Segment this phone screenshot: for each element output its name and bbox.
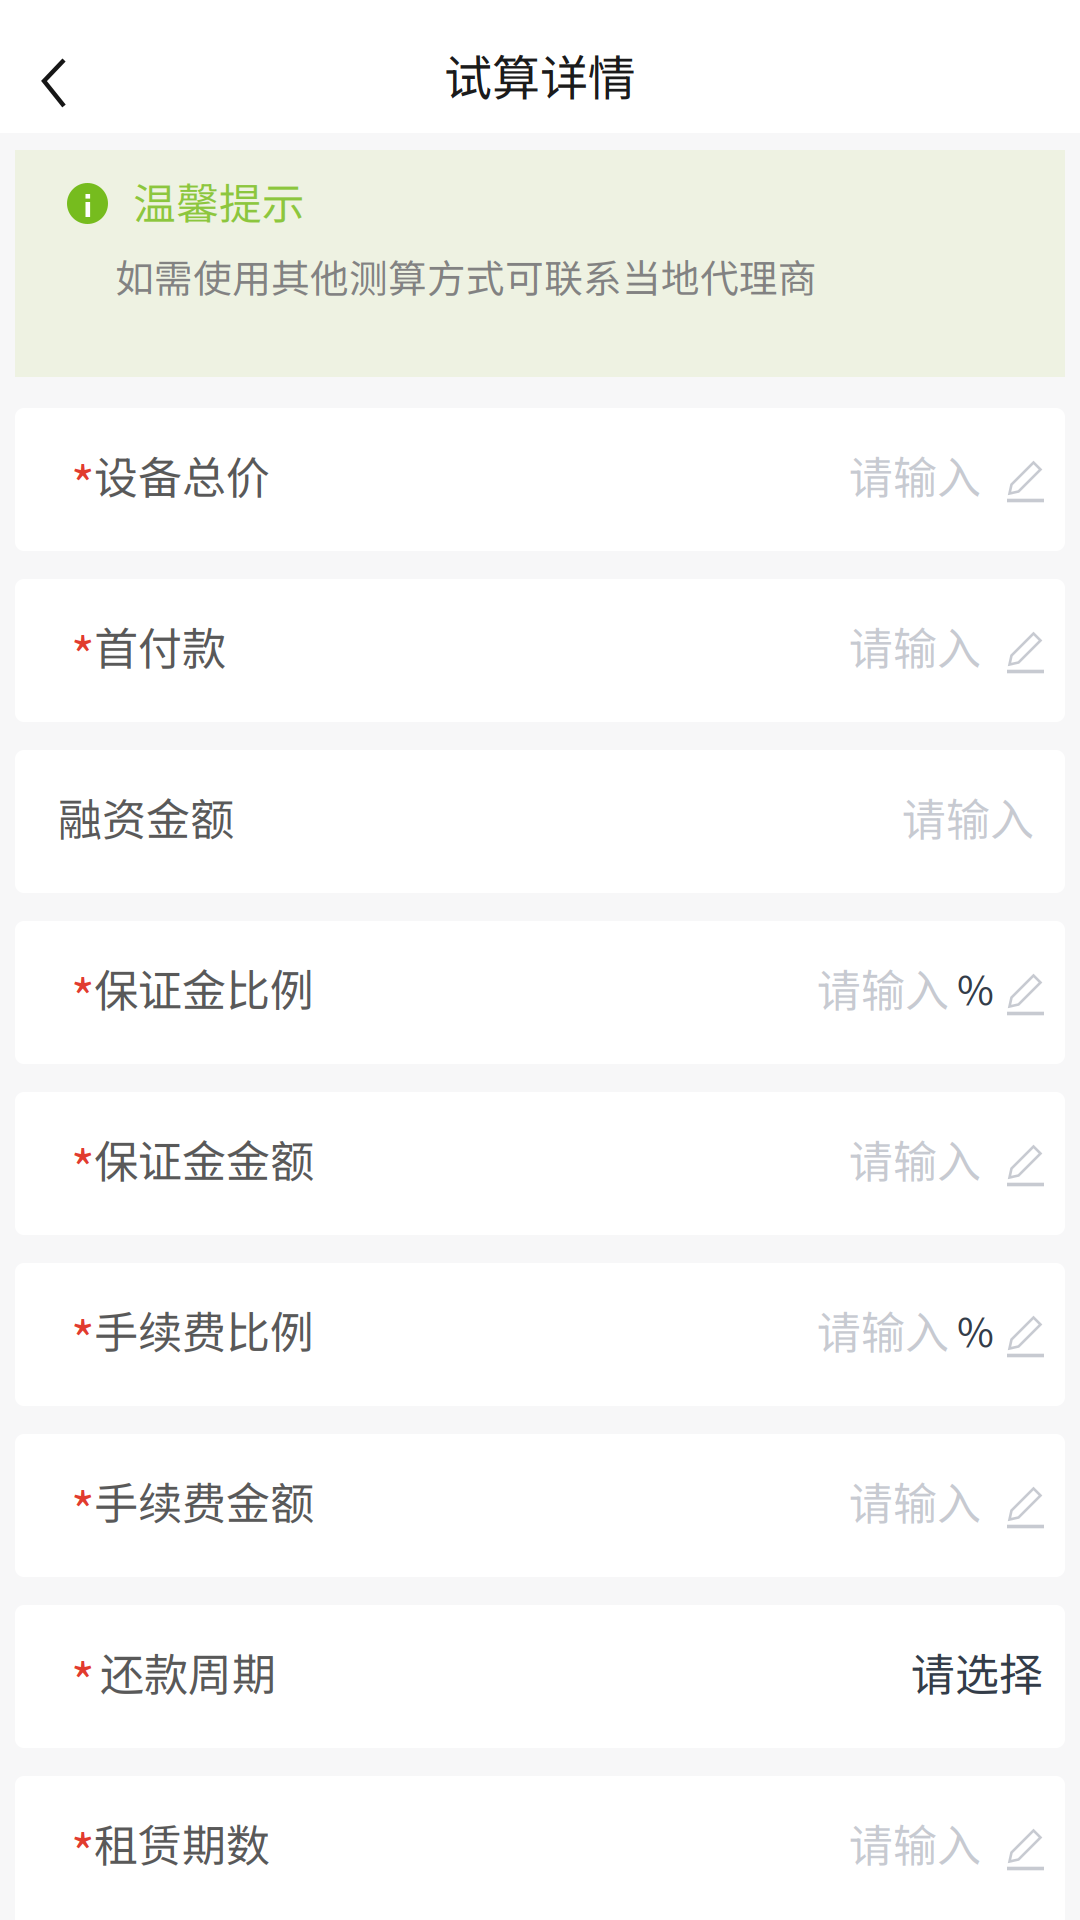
staticText: * [71, 445, 95, 519]
staticText: * [71, 1129, 95, 1203]
staticText: * [71, 1642, 95, 1716]
staticText: * [71, 1300, 95, 1374]
button[interactable]: * [15, 579, 1065, 722]
staticText: 如需使用其他测算方式可联系当地代理商 [115, 248, 817, 304]
staticText: 租赁期数 [94, 1811, 270, 1874]
staticText: 请输入 [817, 1298, 949, 1361]
button[interactable]: * [15, 1776, 1065, 1920]
staticText: 保证金金额 [94, 1127, 314, 1190]
staticText: 请输入 [849, 1811, 981, 1874]
button[interactable]: 返回 [0, 38, 111, 124]
staticText: 请输入 [849, 614, 981, 677]
button[interactable]: * [15, 1605, 1065, 1748]
button[interactable]: * [15, 921, 1065, 1064]
staticText: 试算详情 [444, 40, 636, 109]
staticText: 请输入 [849, 1127, 981, 1190]
staticText: 手续费金额 [94, 1469, 314, 1532]
staticText: 请输入 [902, 785, 1034, 848]
button[interactable]: * [15, 1434, 1065, 1577]
button[interactable]: * [15, 1263, 1065, 1406]
staticText: 温馨提示 [133, 170, 305, 232]
staticText: * [71, 1813, 95, 1887]
staticText: 手续费比例 [94, 1298, 314, 1361]
button[interactable]: 融资金额 [15, 750, 1065, 893]
staticText: 融资金额 [58, 785, 234, 848]
staticText: * [71, 616, 95, 690]
staticText: 设备总价 [94, 443, 270, 506]
staticText: * [71, 1471, 95, 1545]
staticText: 请输入 [849, 1469, 981, 1532]
staticText: 首付款 [94, 614, 226, 677]
staticText: 请选择 [911, 1640, 1043, 1703]
staticText: % [957, 958, 994, 1016]
button[interactable]: * [15, 408, 1065, 551]
button[interactable]: * [15, 1092, 1065, 1235]
staticText: 保证金比例 [94, 956, 314, 1019]
staticText: 请输入 [817, 956, 949, 1019]
staticText: 还款周期 [100, 1640, 276, 1703]
staticText: 请输入 [849, 443, 981, 506]
staticText: * [71, 958, 95, 1032]
staticText: % [957, 1300, 994, 1358]
